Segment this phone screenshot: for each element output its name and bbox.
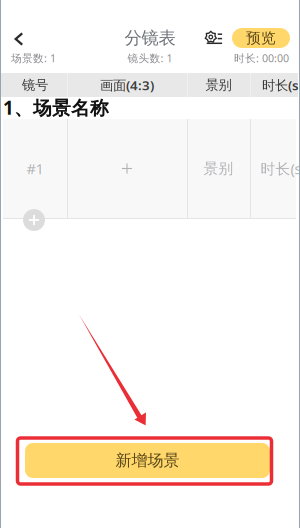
staticText: 镜号 xyxy=(22,77,48,93)
button[interactable]: Settings xyxy=(204,31,223,45)
staticText: 时长: 00:00 xyxy=(234,51,289,65)
staticText: 分镜表 xyxy=(124,27,175,49)
staticText: 画面(4:3) xyxy=(100,76,154,94)
staticText: 景别 xyxy=(205,77,231,93)
staticText: 场景数: 1 xyxy=(11,51,56,65)
staticText: 时长(s) xyxy=(260,159,300,178)
button[interactable]: 新增场景 xyxy=(25,443,270,478)
staticText: 预览 xyxy=(246,29,276,47)
button[interactable]: Add shot xyxy=(23,209,45,231)
staticText: 镜头数: 1 xyxy=(127,51,172,65)
staticText: 时长(s) xyxy=(262,76,300,94)
staticText: 1、场景名称 xyxy=(3,95,109,120)
button[interactable]: 预览 xyxy=(232,28,290,48)
staticText: #1 xyxy=(26,159,43,178)
staticText: 新增场景 xyxy=(115,451,179,470)
staticText: 景别 xyxy=(203,159,233,177)
button[interactable]: Back xyxy=(7,28,31,50)
